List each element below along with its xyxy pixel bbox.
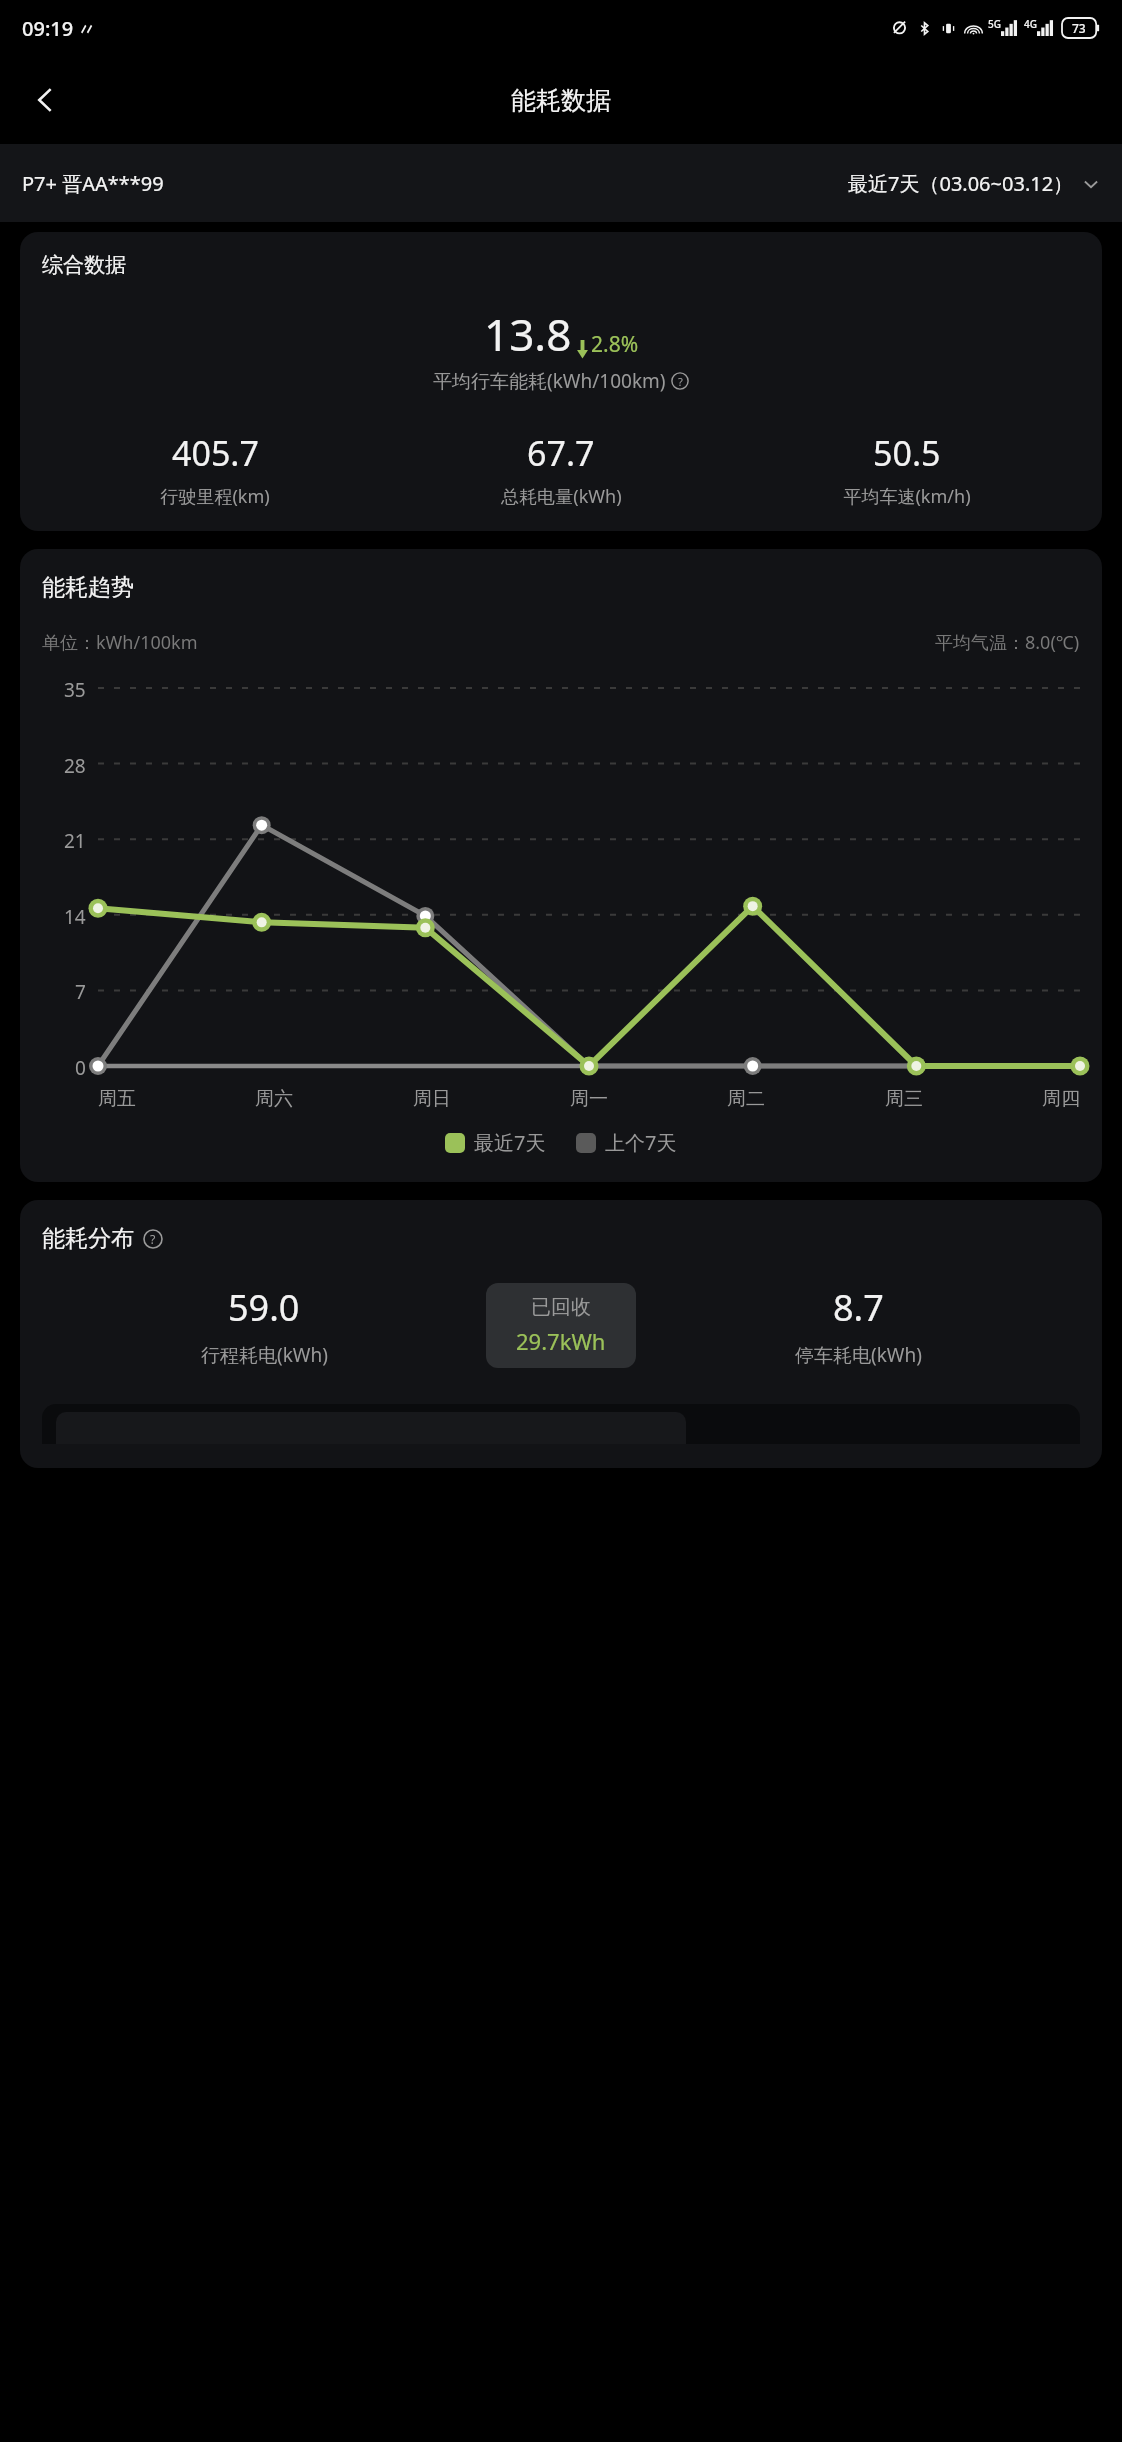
staticText: ? <box>678 374 683 389</box>
staticText: 周六 <box>255 1087 293 1111</box>
staticText: 周五 <box>98 1087 136 1111</box>
staticText: 13.8 <box>484 304 572 364</box>
staticText: 28 <box>64 753 86 775</box>
button[interactable]: 综合数据 <box>20 232 1102 531</box>
staticText: 周二 <box>727 1087 765 1111</box>
button[interactable]: 最近7天（03.06~03.12） <box>848 170 1100 197</box>
button[interactable]: 上个7天 <box>576 1129 677 1156</box>
staticText: 7 <box>75 979 86 1001</box>
staticText: 单位：kWh/100km <box>42 630 198 655</box>
staticText: 平均行车能耗(kWh/100km) <box>433 368 666 394</box>
staticText: 行程耗电(kWh) <box>201 1342 328 1368</box>
button[interactable]: 405.7 <box>42 430 388 509</box>
staticText: 5G <box>988 17 1001 31</box>
staticText: 能耗趋势 <box>42 573 134 602</box>
staticText: 平均气温：8.0(℃) <box>935 630 1080 655</box>
staticText: ? <box>150 1231 156 1248</box>
button[interactable]: 最近7天 <box>445 1129 546 1156</box>
staticText: 29.7kWh <box>516 1326 606 1356</box>
staticText: 8.7 <box>833 1283 884 1332</box>
staticText: 行驶里程(km) <box>160 484 270 509</box>
staticText: P7+ 晋AA***99 <box>22 170 164 197</box>
staticText: 09:19 <box>22 15 74 42</box>
staticText: 最近7天 <box>474 1129 546 1156</box>
staticText: 4G <box>1024 17 1037 31</box>
button[interactable]: 50.5 <box>734 430 1080 509</box>
staticText: 2.8% <box>591 330 639 359</box>
button[interactable]: P7+ 晋AA***99 <box>22 170 164 197</box>
staticText: 405.7 <box>172 430 259 476</box>
staticText: 能耗数据 <box>511 85 611 116</box>
staticText: 21 <box>64 828 86 850</box>
staticText: 能耗分布 <box>42 1224 134 1253</box>
button[interactable]: 能耗趋势 <box>20 549 1102 1182</box>
button[interactable]: Back <box>18 72 74 128</box>
staticText: 73 <box>1072 20 1086 36</box>
staticText: 已回收 <box>531 1295 591 1320</box>
staticText: 0 <box>75 1055 86 1077</box>
button[interactable]: 能耗分布 <box>20 1200 1102 1468</box>
staticText: 周三 <box>885 1087 923 1111</box>
staticText: 停车耗电(kWh) <box>795 1342 922 1368</box>
staticText: 35 <box>64 677 86 699</box>
staticText: 59.0 <box>228 1283 300 1332</box>
staticText: 平均车速(km/h) <box>843 484 971 509</box>
staticText: 周四 <box>1042 1087 1080 1111</box>
staticText: 综合数据 <box>42 252 126 278</box>
staticText: 最近7天（03.06~03.12） <box>848 170 1074 197</box>
staticText: 67.7 <box>527 430 595 476</box>
staticText: 周一 <box>570 1087 608 1111</box>
staticText: 50.5 <box>873 430 941 476</box>
staticText: 上个7天 <box>605 1129 677 1156</box>
staticText: 总耗电量(kWh) <box>501 484 622 509</box>
button[interactable]: 67.7 <box>388 430 734 509</box>
staticText: 周日 <box>413 1087 451 1111</box>
staticText: 14 <box>64 904 86 926</box>
